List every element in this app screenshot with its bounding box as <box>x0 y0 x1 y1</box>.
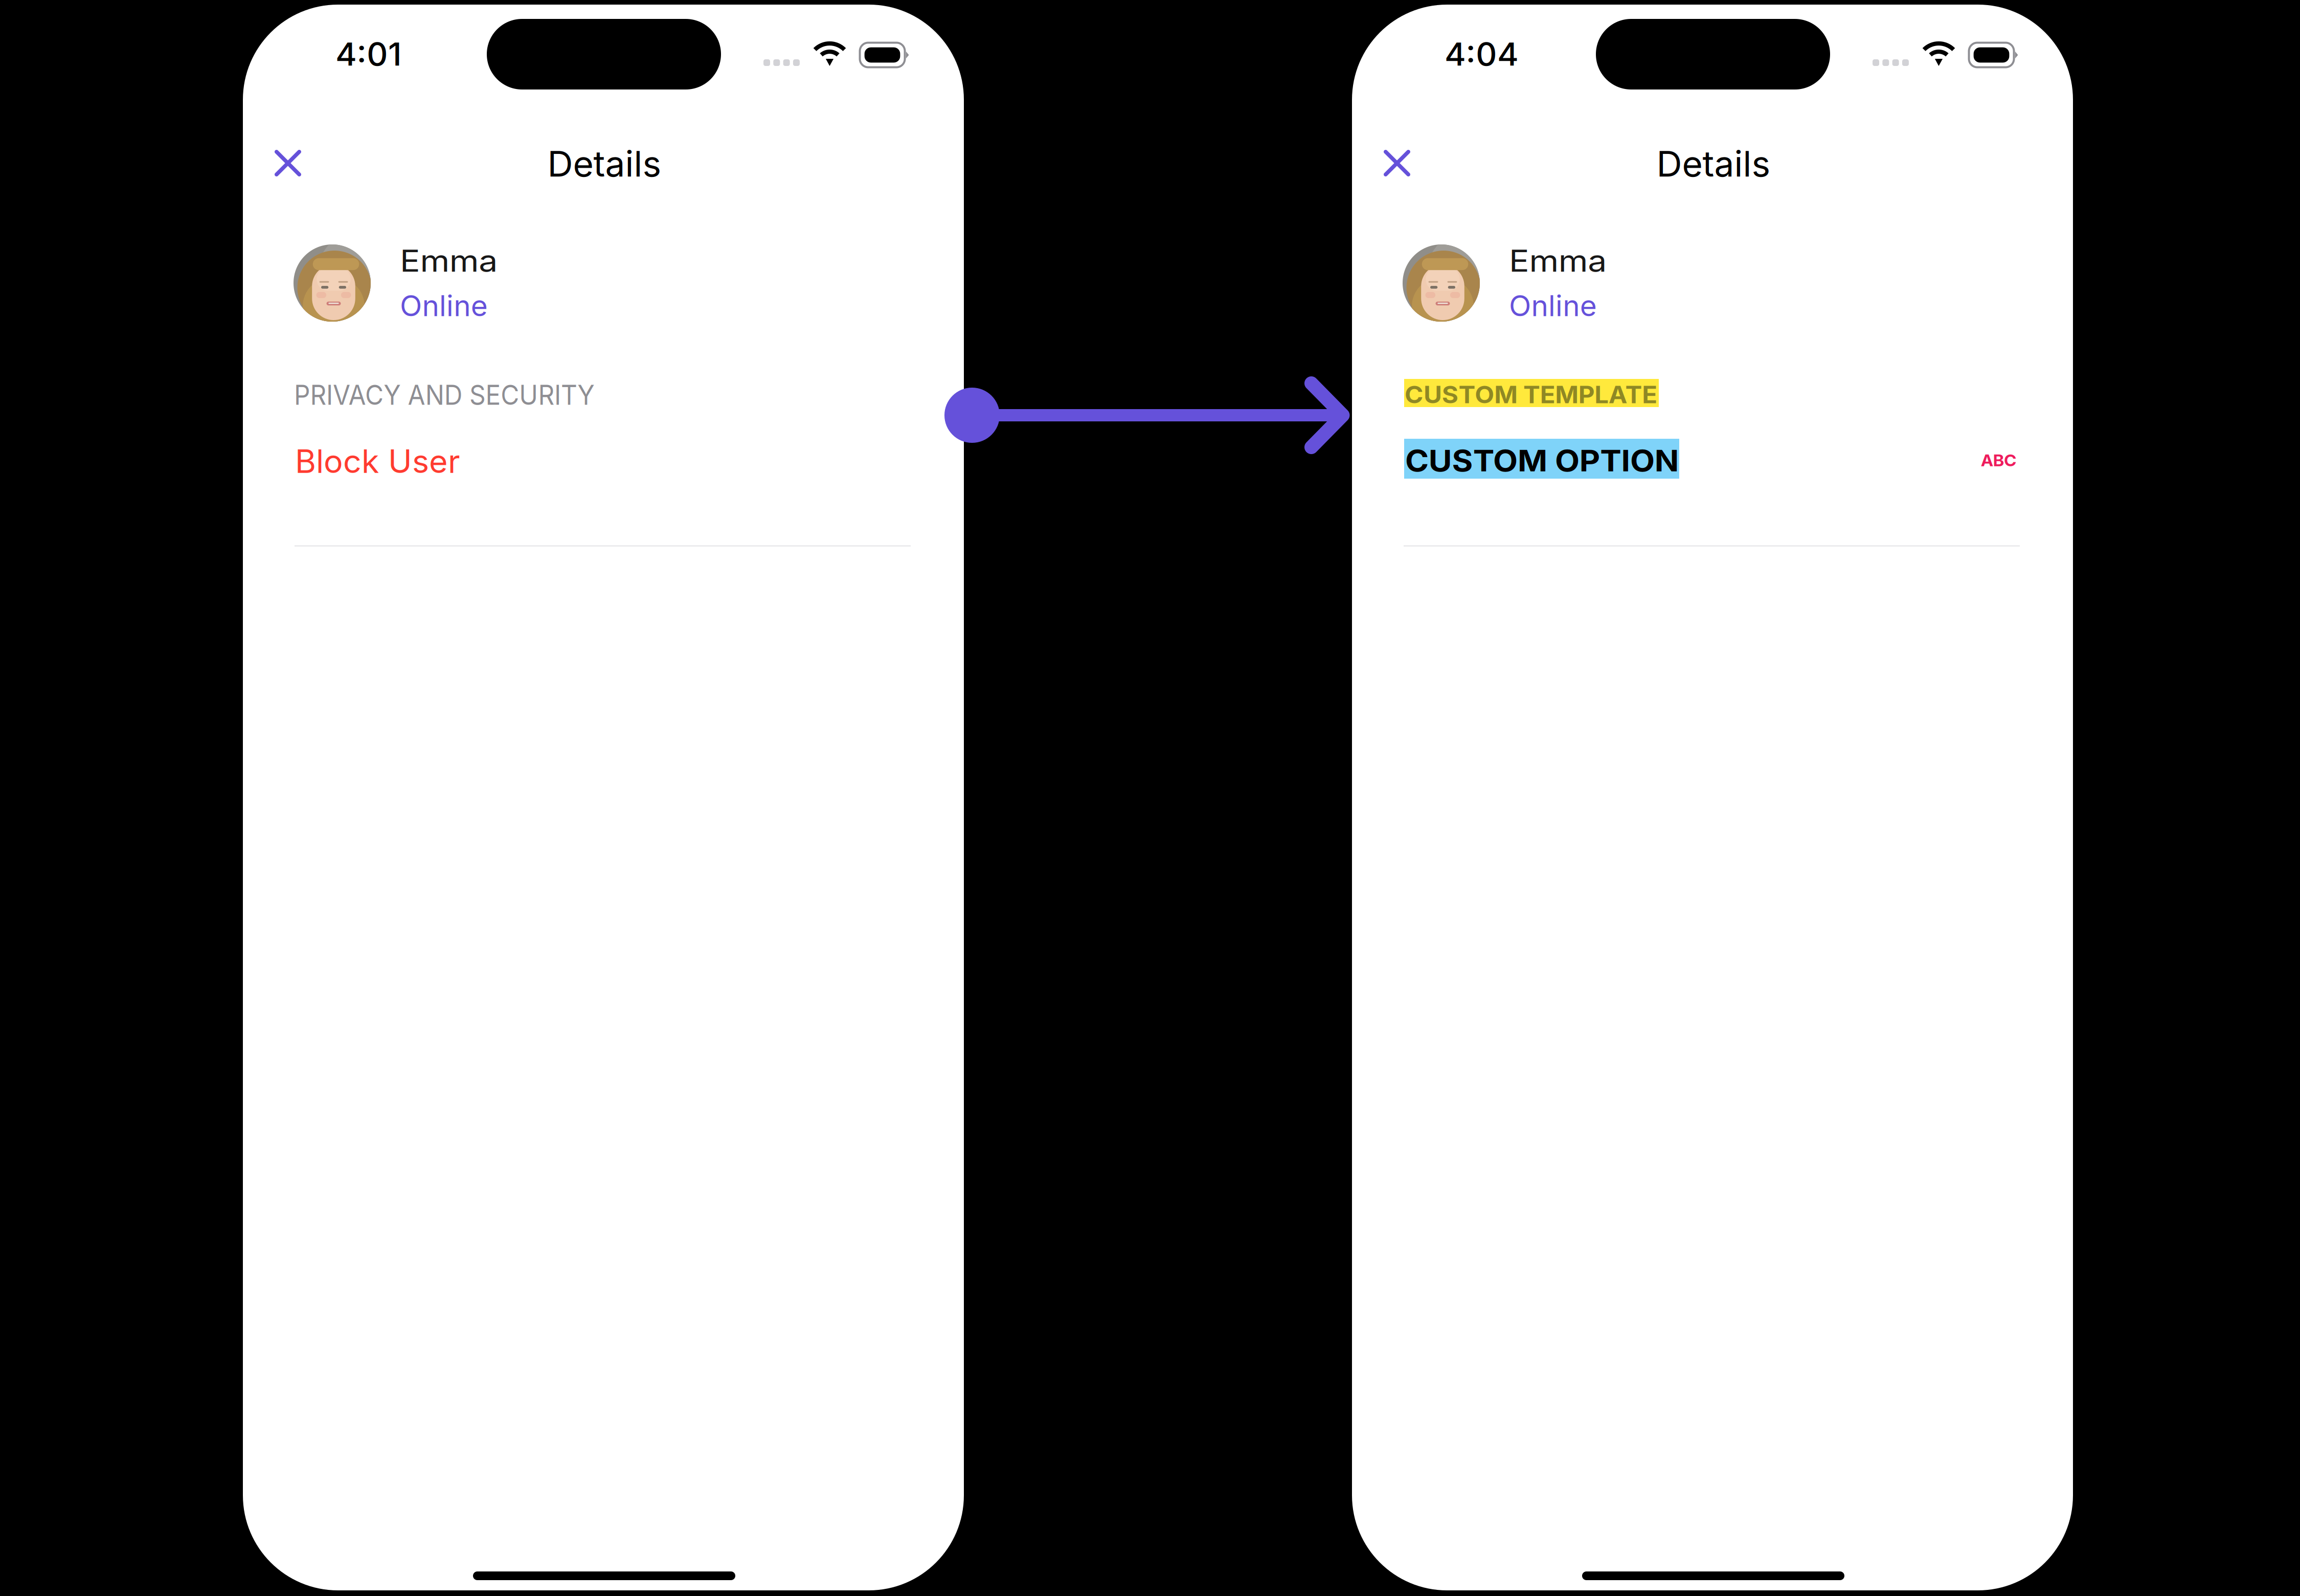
staticText: ABC <box>1981 450 2015 470</box>
staticText: CUSTOM TEMPLATE <box>1405 380 1644 409</box>
staticText: Details <box>1656 142 1771 185</box>
button[interactable]: Close <box>275 150 301 176</box>
staticText: 4:01 <box>335 35 399 73</box>
staticText: Online <box>400 288 487 323</box>
staticText: 4:04 <box>1445 35 1516 73</box>
button[interactable]: CUSTOM OPTION <box>1404 439 1679 479</box>
staticText: CUSTOM OPTION <box>1405 443 1657 478</box>
button[interactable]: Block User <box>295 433 510 490</box>
staticText: Online <box>1509 288 1596 323</box>
button[interactable]: Close <box>1384 150 1410 176</box>
staticText: PRIVACY AND SECURITY <box>294 378 618 411</box>
staticText: Emma <box>1509 243 1596 279</box>
button[interactable]: Details <box>477 138 732 189</box>
button[interactable]: Details <box>1586 138 1841 189</box>
staticText: Details <box>547 142 661 185</box>
staticText: Block User <box>295 442 460 481</box>
staticText: Emma <box>400 243 487 279</box>
button[interactable]: CUSTOM TEMPLATE <box>1404 379 1659 407</box>
